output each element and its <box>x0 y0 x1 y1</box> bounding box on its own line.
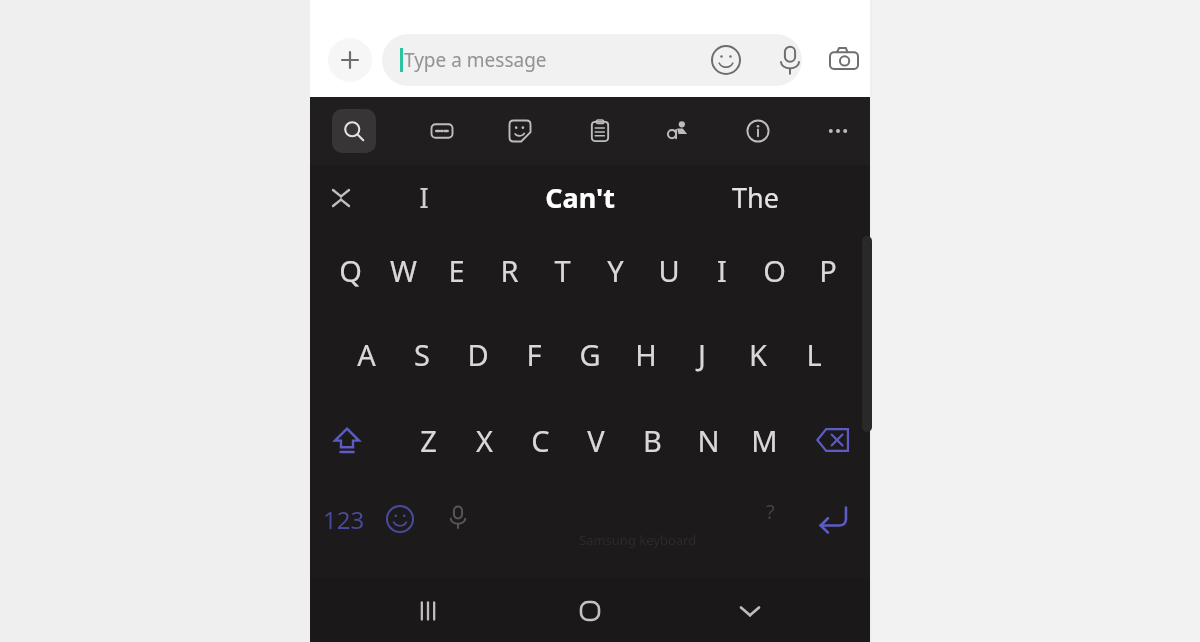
button[interactable]: Voice message <box>770 40 810 80</box>
staticText: Type a message <box>404 47 547 73</box>
button[interactable]: S <box>394 310 450 398</box>
staticText: X <box>476 421 493 460</box>
button[interactable]: D <box>450 310 506 398</box>
button[interactable]: Stickers <box>498 109 542 153</box>
button[interactable]: G <box>562 310 618 398</box>
button[interactable]: Period <box>742 488 798 550</box>
button[interactable]: Type a message <box>382 34 802 86</box>
staticText: ? <box>766 498 775 525</box>
button[interactable]: E <box>430 230 483 310</box>
button[interactable]: Shift <box>316 398 378 482</box>
staticText: I <box>419 179 429 216</box>
staticText: S <box>414 335 430 374</box>
staticText: K <box>749 335 767 374</box>
staticText: L <box>806 335 822 374</box>
staticText: G <box>579 335 601 374</box>
button[interactable]: H <box>618 310 674 398</box>
button[interactable]: O <box>748 230 801 310</box>
staticText: J <box>698 335 706 374</box>
button[interactable]: T <box>536 230 589 310</box>
staticText: T <box>554 251 571 290</box>
staticText: A <box>357 335 376 374</box>
staticText: V <box>587 421 605 460</box>
button[interactable]: A <box>338 310 394 398</box>
staticText: N <box>697 421 720 460</box>
button[interactable]: K <box>730 310 786 398</box>
staticText: B <box>643 421 662 460</box>
staticText: Can't <box>545 179 615 216</box>
button[interactable]: Recents <box>405 588 451 634</box>
staticText: 123 <box>323 503 365 536</box>
staticText: Q <box>339 251 362 290</box>
button[interactable]: Clipboard <box>578 109 622 153</box>
button[interactable]: Z <box>400 398 456 482</box>
button[interactable]: Can't <box>510 169 650 225</box>
button[interactable]: I <box>400 169 448 225</box>
button[interactable]: The <box>690 169 820 225</box>
button[interactable]: B <box>624 398 680 482</box>
staticText: W <box>390 251 417 290</box>
button[interactable]: N <box>680 398 736 482</box>
button[interactable]: Q <box>324 230 377 310</box>
button[interactable]: Info <box>736 109 780 153</box>
button[interactable]: 123 <box>316 488 372 550</box>
button[interactable]: X <box>456 398 512 482</box>
button[interactable]: Backspace <box>802 398 864 482</box>
staticText: The <box>732 179 779 216</box>
button[interactable]: W <box>377 230 430 310</box>
button[interactable]: M <box>736 398 792 482</box>
staticText: D <box>467 335 489 374</box>
button[interactable]: Voice input <box>428 482 488 552</box>
staticText: H <box>635 335 657 374</box>
button[interactable]: P <box>801 230 854 310</box>
button[interactable]: U <box>642 230 695 310</box>
staticText: C <box>531 421 550 460</box>
staticText: Samsung keyboard <box>579 531 697 549</box>
button[interactable]: Y <box>589 230 642 310</box>
staticText: Y <box>607 251 624 290</box>
button[interactable]: V <box>568 398 624 482</box>
staticText: F <box>526 335 542 374</box>
button[interactable]: Text editing <box>656 109 700 153</box>
staticText: Z <box>420 421 437 460</box>
button[interactable]: C <box>512 398 568 482</box>
staticText: U <box>658 251 680 290</box>
button[interactable]: Collapse suggestions <box>318 175 364 221</box>
button[interactable]: Search <box>332 109 376 153</box>
button[interactable]: GIF <box>420 109 464 153</box>
button[interactable]: L <box>786 310 842 398</box>
button[interactable]: Home <box>567 588 613 634</box>
button[interactable]: More options <box>816 109 860 153</box>
staticText: O <box>763 251 786 290</box>
button[interactable]: Add attachment <box>328 38 372 82</box>
button[interactable]: Enter <box>802 484 864 554</box>
staticText: M <box>751 421 778 460</box>
button[interactable]: Emoji <box>706 40 746 80</box>
staticText: P <box>819 251 837 290</box>
button[interactable]: Hide keyboard <box>727 588 773 634</box>
staticText: I <box>717 251 727 290</box>
button[interactable]: I <box>695 230 748 310</box>
button[interactable]: F <box>506 310 562 398</box>
button[interactable]: Emoji keyboard <box>372 488 428 550</box>
staticText: R <box>500 251 519 290</box>
button[interactable]: R <box>483 230 536 310</box>
button[interactable]: Camera <box>824 40 864 80</box>
staticText: E <box>448 251 465 290</box>
button[interactable]: J <box>674 310 730 398</box>
